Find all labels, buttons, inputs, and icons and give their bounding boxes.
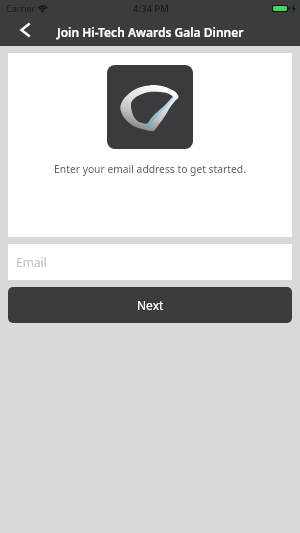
staticText: Join Hi-Tech Awards Gala Dinner [57,24,244,40]
button[interactable]: Back [0,18,40,46]
staticText: Email [16,254,47,270]
staticText: Enter your email address to get started. [54,162,246,176]
button[interactable]: Email [8,244,292,280]
staticText: Next [137,297,164,313]
staticText: Carrier [6,2,36,14]
staticText: 4:34 PM [133,2,169,15]
button[interactable]: Next [8,287,292,323]
